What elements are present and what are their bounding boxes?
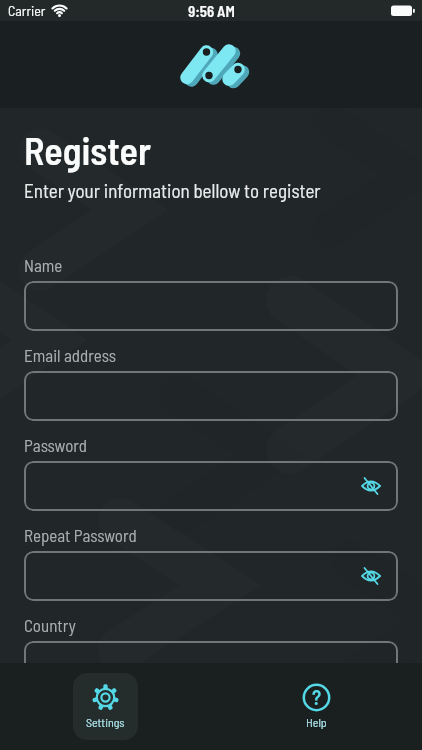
button[interactable]	[24, 551, 398, 601]
button[interactable]	[24, 461, 398, 511]
button[interactable]	[24, 371, 398, 421]
button[interactable]	[24, 641, 398, 691]
button[interactable]	[360, 475, 382, 497]
staticText: Settings	[86, 715, 125, 729]
staticText: 9:56 AM	[188, 2, 235, 20]
staticText: Help	[306, 715, 327, 729]
staticText: Email address	[24, 345, 116, 365]
staticText: Password	[24, 435, 88, 455]
staticText: Country	[24, 615, 76, 635]
staticText: Name	[24, 255, 63, 275]
staticText: Enter your information bellow to registe…	[24, 179, 321, 202]
button[interactable]	[360, 565, 382, 587]
button[interactable]	[24, 281, 398, 331]
button[interactable]: Settings	[73, 673, 138, 740]
staticText: Repeat Password	[24, 525, 137, 545]
staticText: Carrier	[8, 2, 46, 19]
staticText: Register	[24, 127, 151, 173]
button[interactable]: ?	[303, 684, 330, 729]
staticText: ?	[312, 685, 322, 709]
